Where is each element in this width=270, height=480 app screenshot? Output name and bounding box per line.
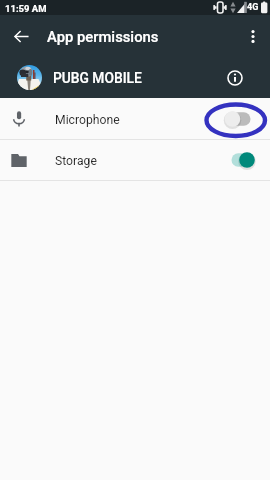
button[interactable]: Permission granted (225, 151, 253, 169)
staticText: Storage (55, 154, 97, 168)
button[interactable]: More options (240, 23, 266, 49)
staticText: PUBG MOBILE (53, 70, 142, 86)
button[interactable]: Permission denied (225, 110, 253, 128)
staticText: App permissions (47, 28, 159, 45)
button[interactable]: Storage (0, 140, 270, 180)
staticText: 4G (247, 2, 259, 13)
button[interactable]: PUBG MOBILE (0, 57, 270, 98)
button[interactable]: Microphone (0, 98, 270, 139)
staticText: 11:59 AM (5, 3, 47, 14)
button[interactable]: App info (224, 67, 246, 89)
staticText: Microphone (55, 113, 120, 127)
button[interactable]: Navigate up (8, 23, 34, 49)
